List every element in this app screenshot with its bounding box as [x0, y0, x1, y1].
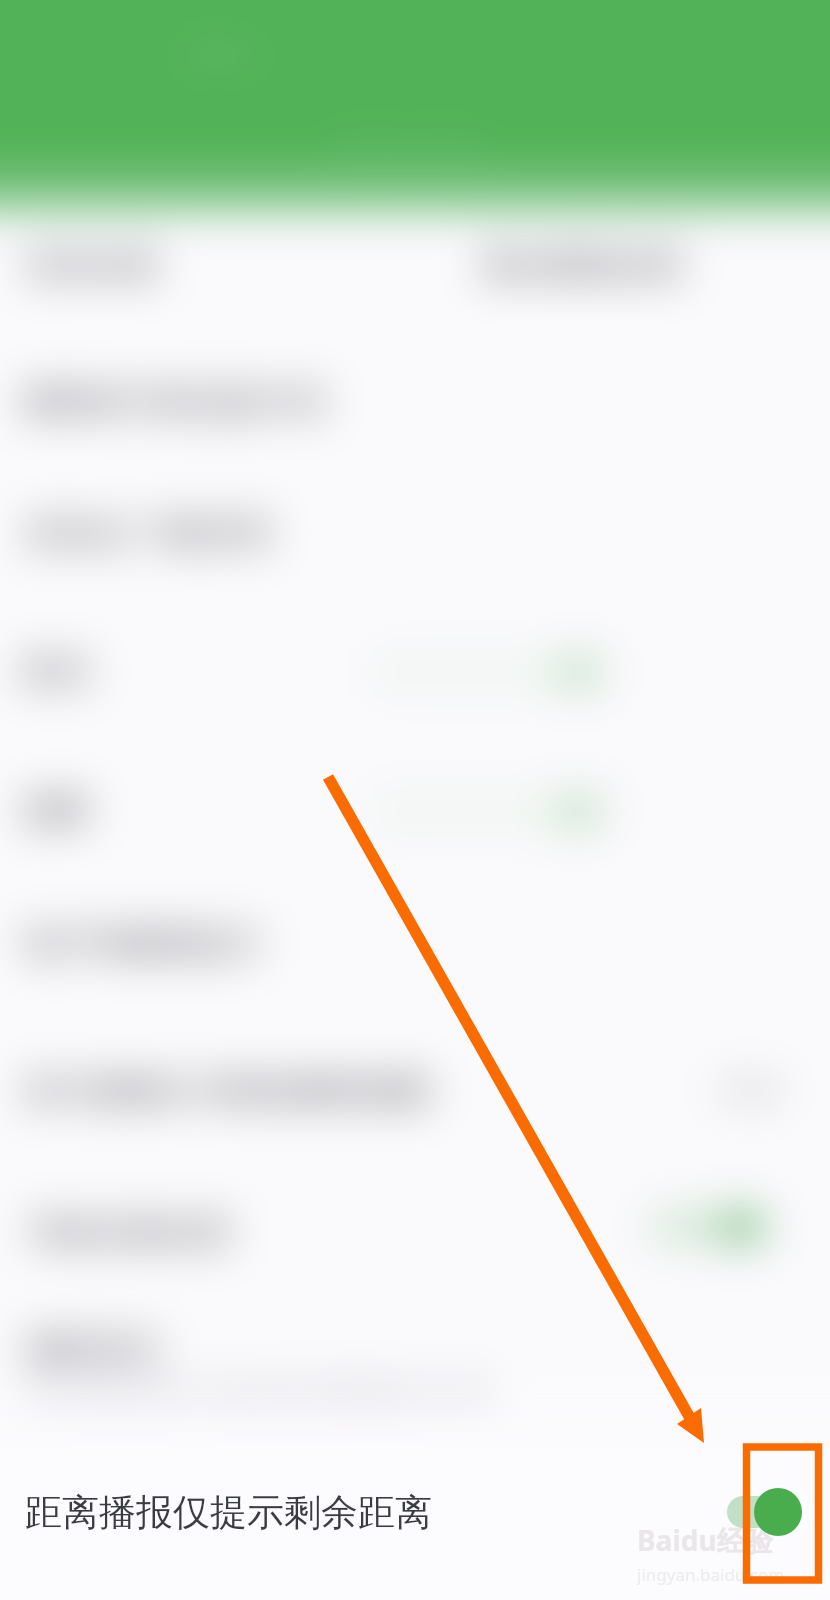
staticText: 更多播报设置	[480, 244, 684, 287]
button[interactable]: Distance broadcast toggle	[723, 1486, 805, 1538]
button[interactable]: 仅在导航过程中生效的语音播报提示内容	[22, 1374, 494, 1411]
button[interactable]: 语音包 下载管理	[22, 507, 273, 557]
staticText: 仅在导航过程中生效的语音播报提示内容	[24, 1376, 492, 1409]
staticText: Baidu经验	[637, 1521, 773, 1559]
staticText: 导航设置	[330, 120, 482, 168]
button[interactable]: Toggle	[650, 1209, 765, 1245]
staticText: 播报语言	[26, 1328, 162, 1371]
button[interactable]: 距离播报仅提示剩余距离	[0, 1436, 830, 1588]
button[interactable]: 路况	[20, 647, 92, 694]
button[interactable]: Toggle	[372, 654, 604, 690]
staticText: 导航音量设置	[28, 1211, 232, 1254]
button[interactable]: 语音设置	[22, 242, 162, 289]
staticText: 语音设置	[24, 244, 160, 287]
button[interactable]: 前方摄像头与限速播报提醒	[22, 1067, 434, 1114]
staticText: 播报前方路况提示音	[22, 380, 328, 423]
staticText: 距离播报仅提示剩余距离	[25, 1489, 432, 1536]
staticText: 路况	[22, 649, 90, 692]
button[interactable]: 更多播报设置	[478, 242, 686, 289]
staticText: 语音包 下载管理	[24, 509, 271, 555]
button[interactable]: Navigation settings title bar	[0, 0, 830, 213]
button[interactable]: 播报前方路况提示音	[20, 378, 330, 425]
button[interactable]: Toggle	[372, 793, 604, 829]
button[interactable]: 导航音量设置	[26, 1209, 234, 1256]
button[interactable]: 电子狗播报提示	[22, 920, 264, 967]
button[interactable]: 播报语言	[24, 1326, 164, 1373]
button[interactable]: 提醒	[20, 786, 92, 833]
staticText: 提醒	[22, 788, 90, 831]
staticText: jingyan.baidu.com	[637, 1563, 785, 1586]
staticText: 前方摄像头与限速播报提醒	[24, 1069, 432, 1112]
staticText: 电子狗播报提示	[24, 922, 262, 965]
